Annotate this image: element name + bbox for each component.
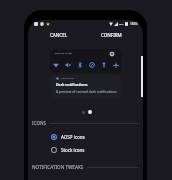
button[interactable]: Flashlight (100, 61, 108, 69)
button[interactable]: Wi-Fi (52, 61, 60, 69)
button[interactable]: CONFIRM (96, 29, 127, 41)
staticText: A preview of normal dark notifications (56, 89, 117, 94)
staticText: CANCEL (50, 32, 68, 38)
staticText: 18:05 (130, 22, 138, 26)
staticText: Stock icons (61, 147, 85, 153)
staticText: ICONS (32, 120, 47, 126)
staticText: Dark notifications (56, 82, 88, 87)
staticText: CONFIRM (101, 32, 122, 38)
button[interactable]: Do not disturb (88, 61, 96, 69)
button[interactable]: SwiftInstaller (50, 75, 122, 98)
staticText: AOSP icons (61, 134, 85, 140)
staticText: 85% (119, 23, 124, 26)
button[interactable]: CANCEL (45, 29, 73, 41)
staticText: SwiftInstaller (61, 77, 74, 80)
button[interactable]: Airplane mode (112, 61, 120, 69)
button[interactable]: Bluetooth (76, 61, 84, 69)
button[interactable]: Sound (64, 61, 72, 69)
button[interactable]: AOSP icons (28, 130, 143, 143)
staticText: NOTIFICATION TWEAKS (32, 164, 84, 170)
staticText: 20:43 Sun 18 April (55, 52, 72, 55)
button[interactable]: Stock icons (28, 143, 143, 156)
other: Settings (110, 52, 114, 56)
